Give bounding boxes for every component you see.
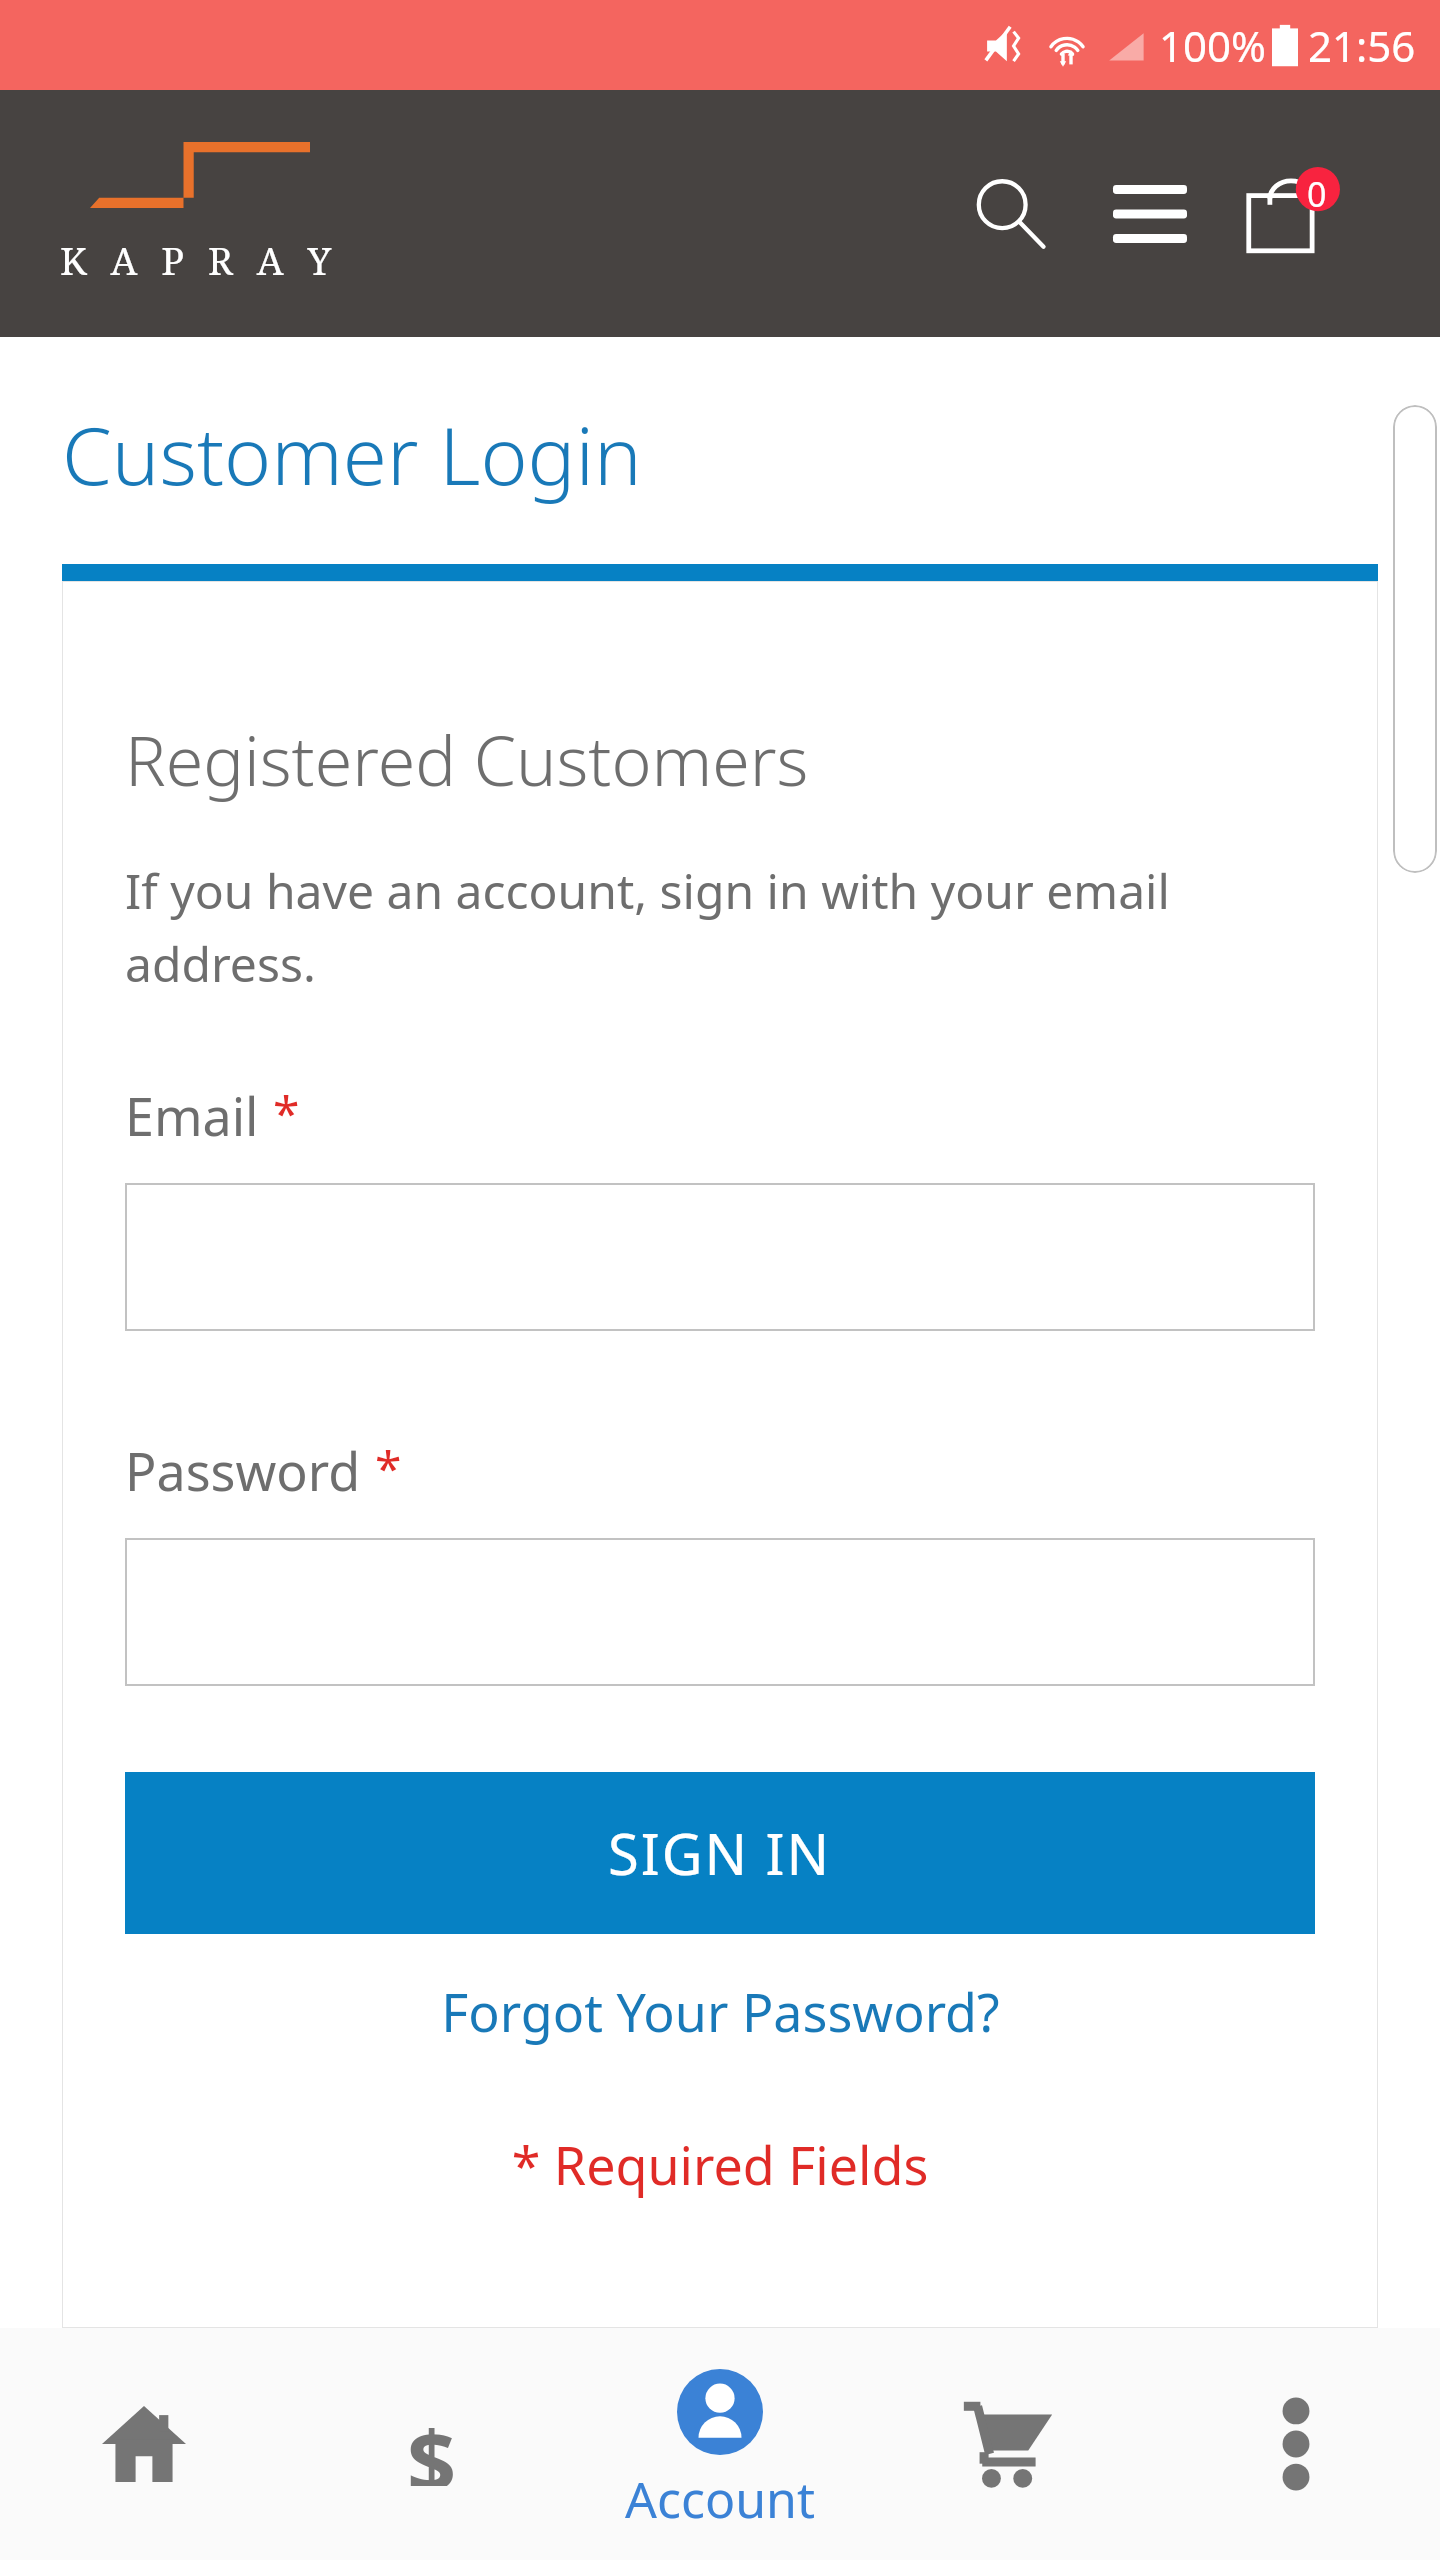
button[interactable]: Forgot Your Password? (125, 1934, 1315, 2065)
button[interactable]: Home (0, 2328, 288, 2560)
button[interactable]: Account (576, 2328, 864, 2560)
staticText: Registered Customers (125, 713, 809, 806)
staticText: Account (625, 2465, 816, 2533)
staticText: * (273, 1080, 300, 1145)
staticText: SIGN IN (608, 1815, 832, 1891)
button[interactable]: Search (950, 154, 1070, 274)
button[interactable]: SIGN IN (125, 1772, 1315, 1934)
staticText: 21:56 (1308, 17, 1416, 74)
button[interactable]: Cart, 0 items (1226, 149, 1356, 279)
staticText: K A P R A Y (60, 234, 339, 286)
button[interactable] (125, 1183, 1315, 1331)
staticText: Forgot Your Password? (441, 1976, 1000, 2047)
staticText: * (375, 1435, 402, 1500)
staticText: Password (125, 1435, 361, 1506)
staticText: $ (407, 2402, 457, 2486)
button[interactable]: Menu (1090, 154, 1210, 274)
button[interactable] (125, 1538, 1315, 1686)
staticText: 100% (1159, 17, 1266, 74)
button[interactable]: Cart (864, 2328, 1152, 2560)
button[interactable]: More (1152, 2328, 1440, 2560)
staticText: * Required Fields (125, 2129, 1315, 2200)
staticText: Email (125, 1080, 259, 1151)
staticText: Customer Login (62, 399, 642, 508)
staticText: If you have an account, sign in with you… (125, 858, 1315, 996)
button[interactable]: Deals (288, 2328, 576, 2560)
staticText: 0 (1307, 171, 1327, 217)
